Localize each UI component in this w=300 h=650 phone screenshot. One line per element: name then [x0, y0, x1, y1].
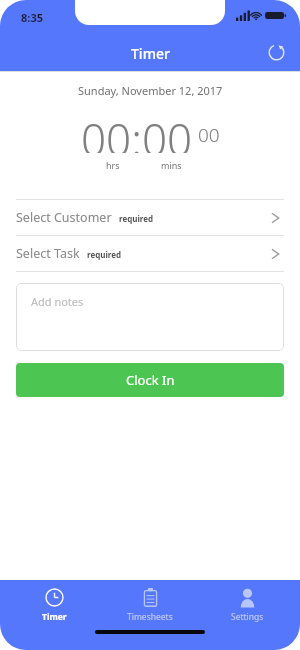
staticText: Select Customer	[16, 209, 112, 226]
staticText: 00:00	[81, 109, 193, 153]
button[interactable]: Refresh	[260, 36, 292, 68]
staticText: hrs	[106, 159, 120, 171]
staticText: required	[119, 213, 154, 224]
staticText: Timer	[42, 611, 67, 623]
staticText: Sunday, November 12, 2017	[78, 83, 223, 98]
button[interactable]: Clock In	[16, 363, 284, 397]
button[interactable]: Add notes	[16, 283, 284, 351]
staticText: Settings	[231, 611, 264, 623]
button[interactable]: Timesheets	[107, 586, 193, 625]
staticText: required	[87, 249, 122, 260]
staticText: Timer	[131, 44, 170, 63]
staticText: Timesheets	[127, 611, 173, 623]
staticText: Add notes	[31, 294, 84, 309]
staticText: 00	[198, 122, 220, 148]
staticText: 8:35	[21, 10, 43, 25]
staticText: Clock In	[126, 371, 175, 389]
button[interactable]: Settings	[204, 586, 290, 625]
staticText: mins	[161, 159, 182, 171]
button[interactable]: Select Task	[0, 236, 300, 271]
button[interactable]: Select Customer	[0, 200, 300, 235]
staticText: Select Task	[16, 245, 80, 262]
button[interactable]: Timer	[11, 586, 97, 625]
